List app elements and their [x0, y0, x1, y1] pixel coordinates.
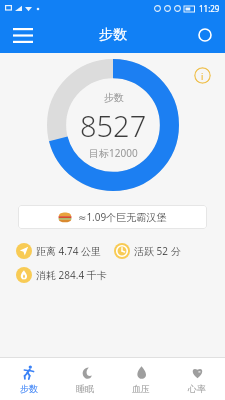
staticText: 血压 — [132, 383, 150, 394]
staticText: 步数 — [99, 26, 127, 44]
button[interactable]: 活跃 52 分 — [114, 243, 181, 259]
button[interactable]: 血压 — [113, 361, 169, 398]
button[interactable]: Menu — [0, 17, 46, 53]
button[interactable]: Refresh — [185, 17, 225, 53]
button[interactable]: Info — [194, 67, 211, 84]
staticText: 11:29 — [199, 3, 220, 14]
staticText: 活跃 52 分 — [134, 244, 181, 258]
button[interactable]: 步数 — [0, 361, 57, 398]
button[interactable]: 心率 — [169, 361, 225, 398]
staticText: 8527 — [80, 106, 147, 145]
staticText: 消耗 284.4 千卡 — [36, 268, 107, 282]
staticText: 目标12000 — [89, 146, 138, 160]
button[interactable]: ≈1.09个巨无霸汉堡 — [18, 205, 207, 229]
button[interactable]: 距离 4.74 公里 — [16, 243, 102, 259]
staticText: 步数 — [104, 91, 124, 104]
staticText: ≈1.09个巨无霸汉堡 — [78, 210, 167, 224]
staticText: i — [201, 70, 204, 82]
button[interactable]: 消耗 284.4 千卡 — [16, 267, 107, 283]
staticText: 心率 — [188, 383, 206, 394]
staticText: 睡眠 — [76, 383, 94, 394]
button[interactable]: 睡眠 — [57, 361, 113, 398]
staticText: 距离 4.74 公里 — [36, 244, 102, 258]
staticText: 步数 — [20, 383, 38, 394]
